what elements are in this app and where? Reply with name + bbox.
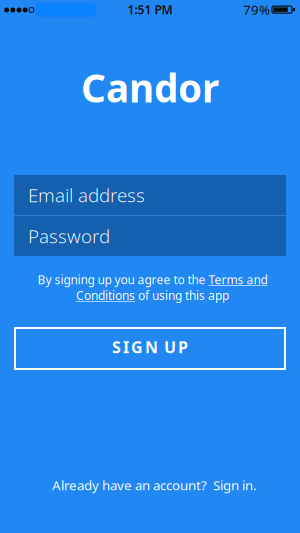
staticText: 79%: [243, 1, 270, 18]
staticText: Password: [28, 224, 110, 248]
staticText: Already have an account? Sign in.: [52, 476, 257, 494]
button[interactable]: Email address: [14, 175, 286, 215]
button[interactable]: Password: [14, 216, 286, 256]
staticText: 1:51 PM: [127, 1, 172, 17]
button[interactable]: S I G N U P: [14, 327, 286, 370]
staticText: Conditions of using this app: [76, 287, 229, 303]
staticText: Email address: [28, 183, 145, 207]
staticText: S I G N U P: [112, 336, 188, 358]
button[interactable]: Already have an account? Sign in.: [52, 476, 257, 494]
button[interactable]: By signing up you agree to the Terms and: [37, 272, 267, 303]
staticText: By signing up you agree to the Terms and: [37, 272, 267, 287]
staticText: Candor: [81, 62, 219, 113]
